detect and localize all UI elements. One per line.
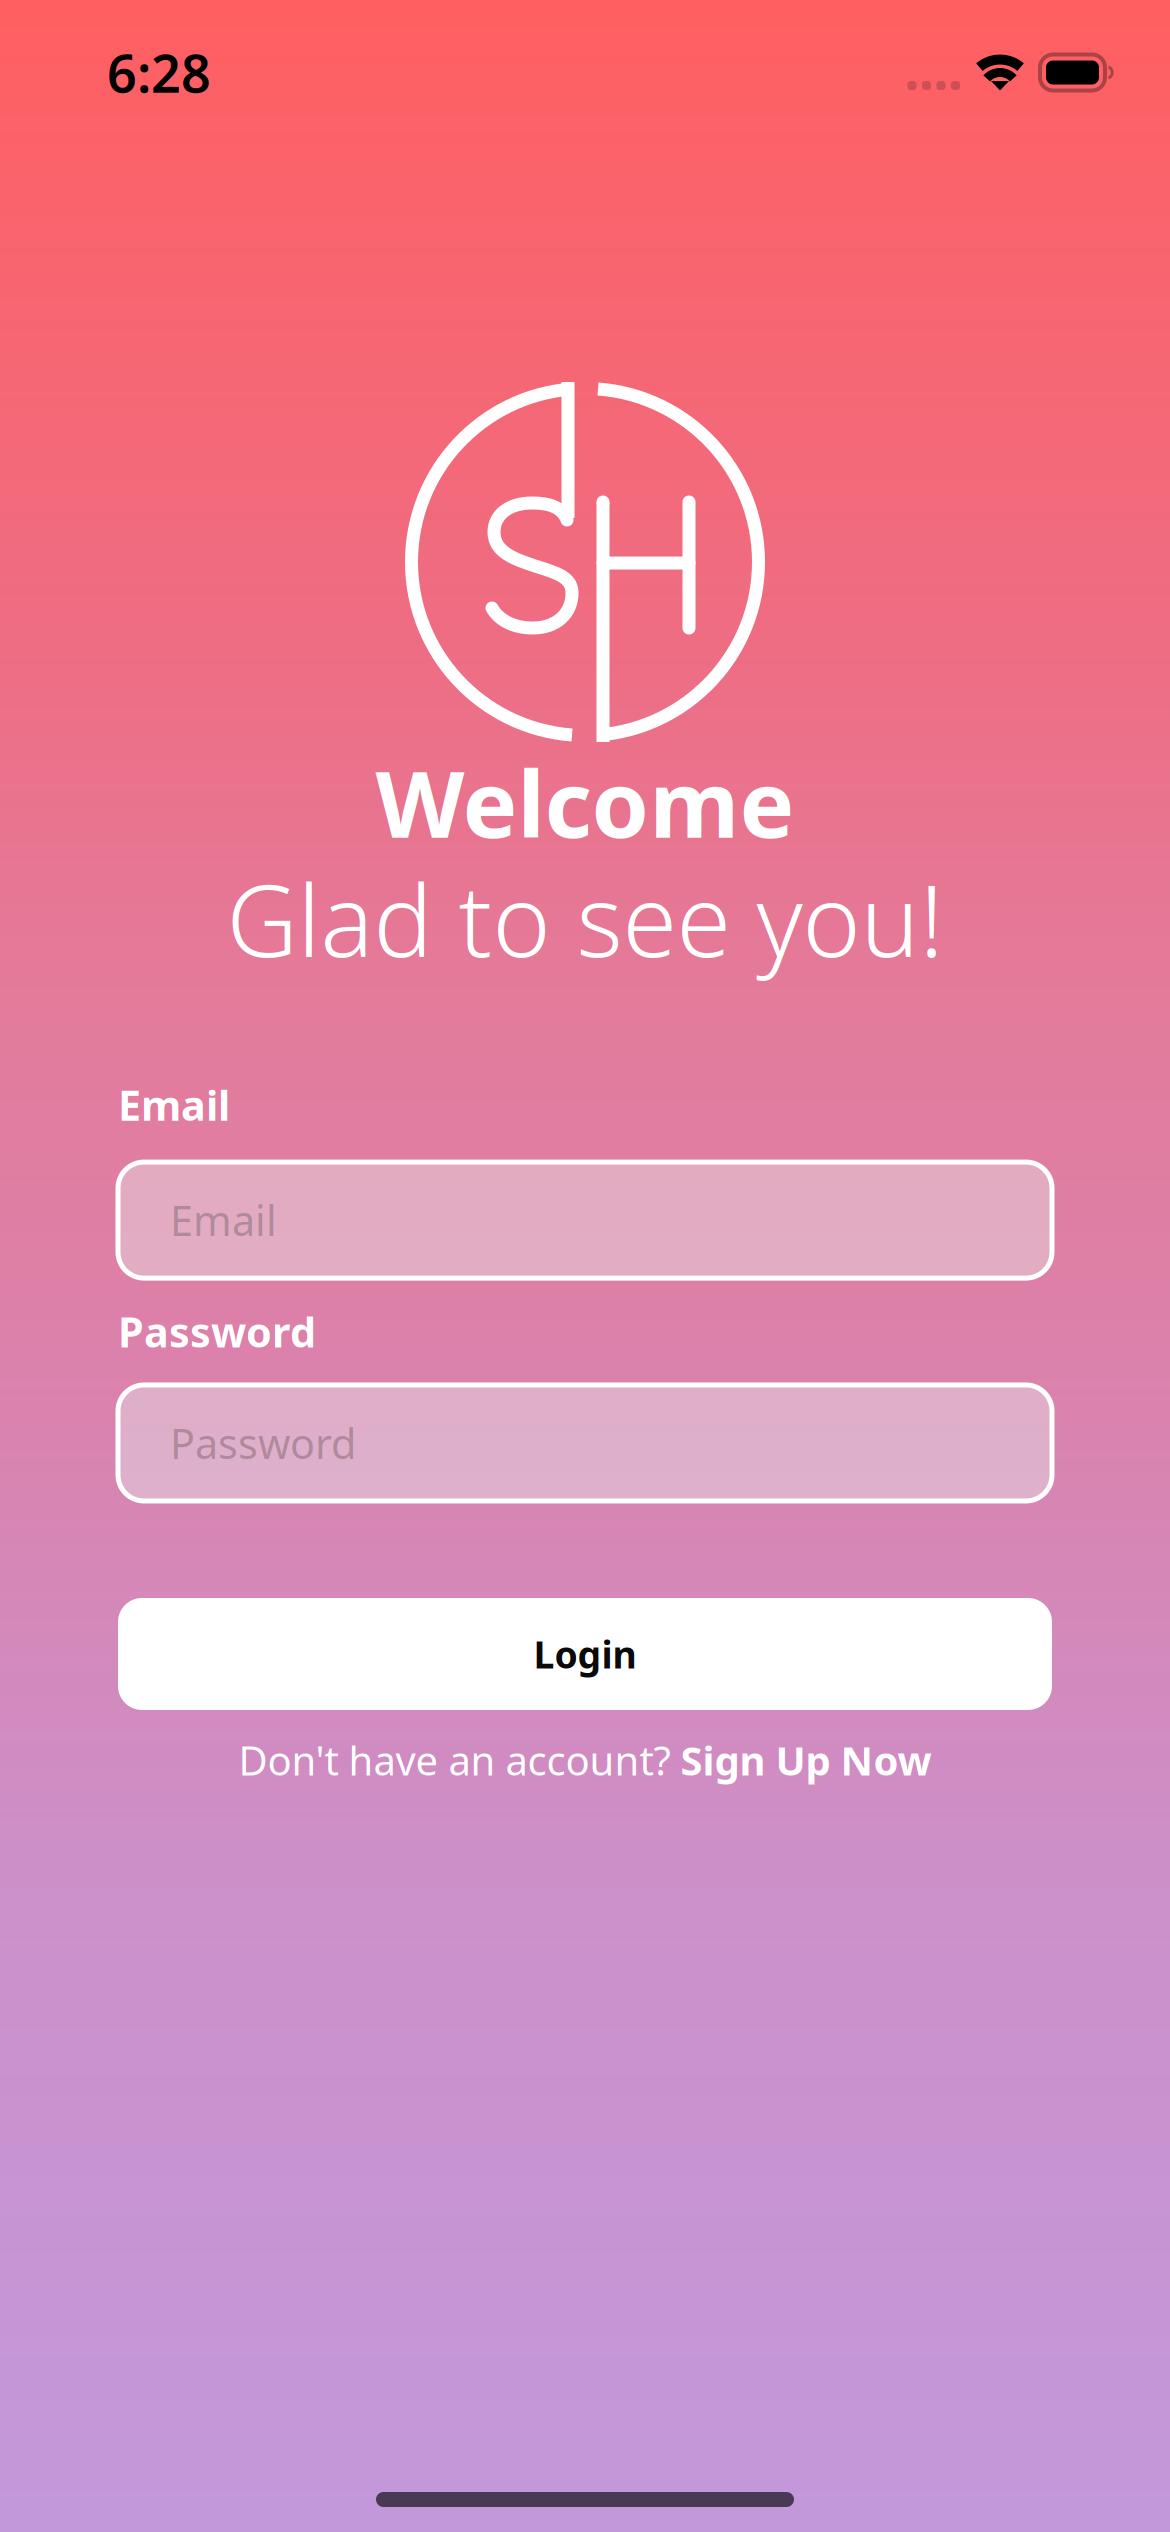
staticText: Password [118, 1304, 316, 1359]
staticText: Email [170, 1193, 277, 1247]
staticText: Password [170, 1415, 356, 1470]
staticText: Login [533, 1629, 636, 1679]
button[interactable]: Login [118, 1598, 1052, 1710]
staticText: 6:28 [107, 38, 211, 107]
staticText: Email [118, 1077, 230, 1132]
staticText: Don't have an account? [238, 1733, 680, 1786]
staticText: Glad to see you! [226, 853, 943, 984]
staticText: Sign Up Now [680, 1733, 931, 1786]
button[interactable]: Don't have an account? [118, 1718, 1052, 1802]
staticText: Welcome [375, 741, 794, 863]
